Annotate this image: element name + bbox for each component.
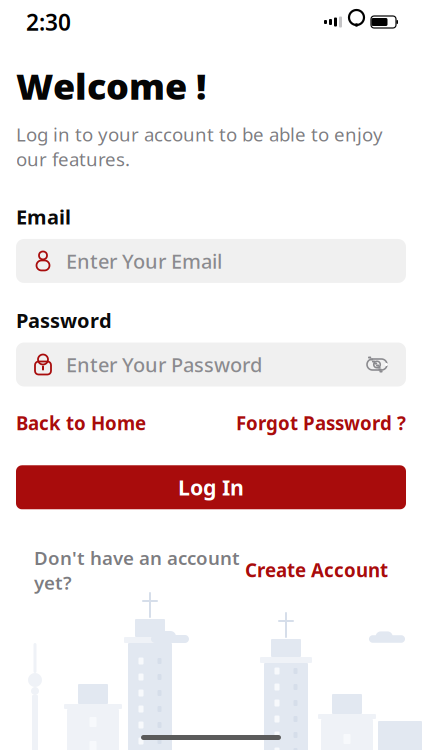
staticText: Password [16,307,112,333]
staticText: Welcome ! [16,62,206,110]
staticText: Log in to your account to be able to enj… [16,122,383,171]
button[interactable]: Forgot Password ? [236,410,406,435]
staticText: Back to Home [16,410,146,435]
button[interactable]: Log In [16,465,406,509]
staticText: Enter Your Email [66,248,222,274]
staticText: Log In [178,473,244,501]
staticText: Enter Your Password [66,351,262,378]
staticText: Forgot Password ? [236,410,406,435]
staticText: 2:30 [26,7,71,37]
button[interactable]: Back to Home [16,410,146,435]
staticText: Don't have an account yet? [34,545,240,595]
staticText: Email [16,203,71,230]
button[interactable]: Show password [358,355,388,373]
button[interactable]: Don't have an account yet? [16,545,406,595]
staticText: Create Account [245,558,388,582]
